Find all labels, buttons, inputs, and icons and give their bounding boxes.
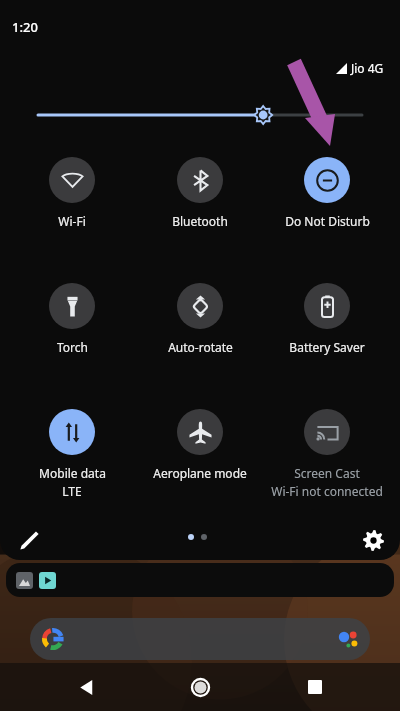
button[interactable]: Wi-Fi	[12, 157, 132, 229]
staticText: Wi-Fi	[58, 213, 86, 229]
staticText: Bluetooth	[172, 213, 228, 229]
button[interactable]: Back	[65, 667, 105, 707]
button[interactable]: Settings	[354, 521, 392, 559]
button[interactable]: Auto-rotate	[140, 283, 260, 355]
button[interactable]: Torch	[12, 283, 132, 355]
staticText: Auto-rotate	[168, 339, 233, 355]
staticText: Torch	[57, 339, 88, 355]
staticText: Jio 4G	[351, 60, 384, 76]
button[interactable]: Search	[30, 618, 370, 660]
staticText: Mobile data	[39, 465, 106, 481]
button[interactable]: Recents	[295, 667, 335, 707]
staticText: Do Not Disturb	[285, 213, 370, 229]
button[interactable]: Edit tiles	[10, 521, 48, 559]
button[interactable]: Mobile data	[12, 409, 132, 499]
staticText: Wi-Fi not connected	[271, 483, 383, 499]
staticText: Battery Saver	[289, 339, 365, 355]
button[interactable]: Brightness	[38, 104, 362, 126]
staticText: Aeroplane mode	[153, 465, 247, 481]
button[interactable]: Bluetooth	[140, 157, 260, 229]
button[interactable]: Aeroplane mode	[140, 409, 260, 481]
button[interactable]: Home	[180, 667, 220, 707]
staticText: LTE	[62, 483, 82, 499]
button[interactable]: Screen Cast	[267, 409, 387, 499]
button[interactable]: Do Not Disturb	[267, 157, 387, 229]
staticText: 1:20	[12, 18, 38, 36]
button[interactable]: Battery Saver	[267, 283, 387, 355]
staticText: Screen Cast	[294, 465, 360, 481]
